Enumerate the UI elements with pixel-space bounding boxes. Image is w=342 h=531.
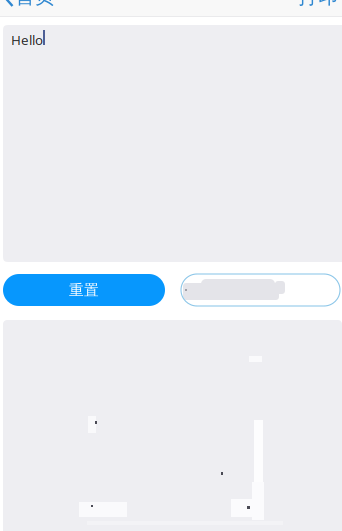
staticText: 首页 — [15, 0, 55, 9]
staticText: 打印 — [298, 0, 338, 9]
button[interactable] — [181, 274, 340, 306]
button[interactable]: 重置 — [3, 274, 165, 306]
staticText: 重置 — [69, 281, 99, 299]
button[interactable]: 打印 — [298, 0, 342, 16]
staticText: Hello — [11, 31, 43, 49]
button[interactable]: 首页 — [0, 0, 55, 16]
